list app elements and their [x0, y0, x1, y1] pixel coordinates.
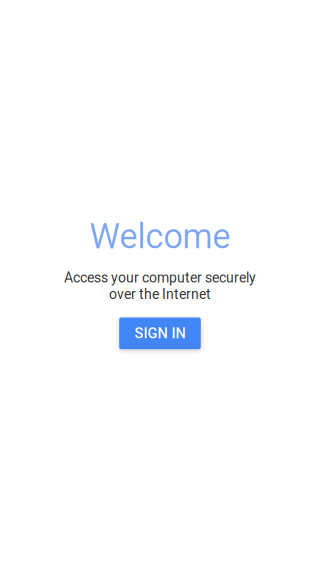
staticText: over the Internet	[109, 286, 211, 302]
staticText: Welcome	[89, 216, 230, 256]
staticText: SIGN IN	[134, 325, 185, 342]
staticText: Access your computer securely	[64, 270, 256, 286]
button[interactable]: SIGN IN	[119, 317, 201, 349]
